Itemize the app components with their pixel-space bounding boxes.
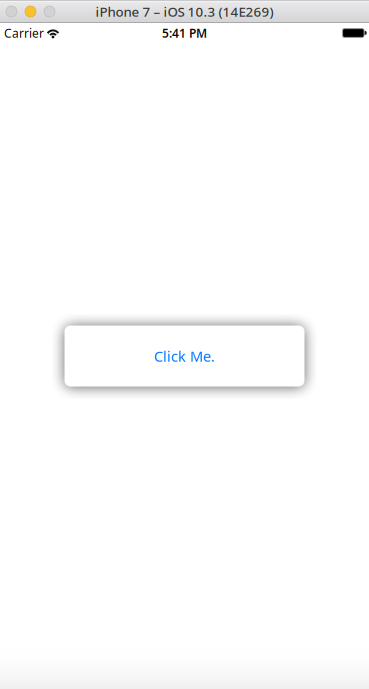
button[interactable]: Minimize: [25, 6, 36, 17]
staticText: Carrier: [4, 25, 44, 41]
staticText: 5:41 PM: [162, 25, 207, 41]
button[interactable]: Zoom: [44, 6, 55, 17]
staticText: Click Me.: [154, 346, 215, 366]
staticText: iPhone 7 – iOS 10.3 (14E269): [95, 3, 273, 20]
button[interactable]: Click Me.: [64, 325, 304, 386]
button[interactable]: Close: [6, 6, 17, 17]
